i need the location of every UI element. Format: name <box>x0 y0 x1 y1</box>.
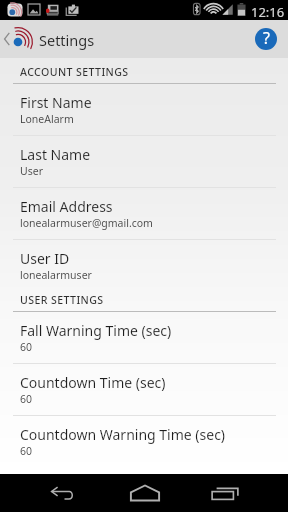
button[interactable]: Recent apps <box>200 474 250 512</box>
staticText: 60 <box>20 392 33 406</box>
button[interactable]: Fall Warning Time (sec) <box>0 312 288 364</box>
staticText: Last Name <box>20 145 91 164</box>
button[interactable]: First Name <box>0 84 288 136</box>
staticText: ? <box>263 28 270 49</box>
button[interactable]: Email Address <box>0 188 288 240</box>
staticText: 60 <box>20 444 33 458</box>
staticText: Countdown Time (sec) <box>20 373 166 392</box>
staticText: Countdown Warning Time (sec) <box>20 425 226 444</box>
staticText: 60 <box>20 340 33 354</box>
staticText: Fall Warning Time (sec) <box>20 321 172 340</box>
button[interactable]: User ID <box>0 240 288 292</box>
button[interactable]: Last Name <box>0 136 288 188</box>
button[interactable]: Help <box>255 28 277 50</box>
staticText: Settings <box>39 30 95 50</box>
staticText: Email Address <box>20 197 113 216</box>
button[interactable]: Countdown Time (sec) <box>0 364 288 416</box>
staticText: lonealarmuser@gmail.com <box>20 216 153 230</box>
button[interactable]: Countdown Warning Time (sec) <box>0 416 288 468</box>
staticText: First Name <box>20 93 92 112</box>
button[interactable]: Home <box>120 474 170 512</box>
staticText: 12:16 <box>251 3 285 21</box>
staticText: lonealarmuser <box>20 268 92 282</box>
staticText: ACCOUNT SETTINGS <box>20 65 129 79</box>
staticText: User ID <box>20 249 70 268</box>
button[interactable]: Back <box>37 474 87 512</box>
staticText: USER SETTINGS <box>20 293 104 307</box>
button[interactable]: Navigate up <box>0 20 95 58</box>
staticText: User <box>20 164 43 178</box>
staticText: LoneAlarm <box>20 112 74 126</box>
